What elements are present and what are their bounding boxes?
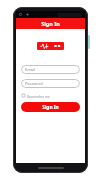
button[interactable]: Sign In (21, 102, 80, 112)
other: App logo (37, 42, 64, 50)
button[interactable]: Email (21, 65, 80, 74)
button[interactable]: Password (21, 79, 80, 88)
staticText: Sign In (42, 104, 59, 111)
staticText: Remember me (27, 94, 50, 98)
button[interactable]: Sign In (16, 18, 85, 29)
staticText: Sign In (41, 20, 60, 27)
staticText: Password (25, 81, 43, 86)
button[interactable]: Remember me (22, 92, 79, 99)
staticText: Email (25, 67, 35, 72)
